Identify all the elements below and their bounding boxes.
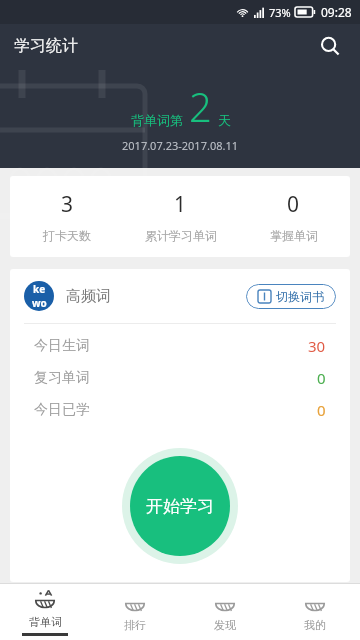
button[interactable]: 开始学习 [130, 456, 230, 556]
staticText: 09:28 [321, 4, 352, 20]
button[interactable]: 排行 [90, 584, 180, 640]
staticText: 掌握单词 [270, 228, 318, 243]
staticText: 3 [61, 190, 74, 219]
staticText: 背单词第 [131, 112, 183, 128]
staticText: 我的 [304, 618, 326, 632]
staticText: 73% [269, 5, 291, 20]
button[interactable]: 3 [10, 190, 124, 243]
staticText: 2017.07.23-2017.08.11 [122, 138, 239, 153]
staticText: wo [32, 296, 47, 310]
staticText: ke [33, 282, 46, 296]
staticText: 2 [189, 79, 212, 133]
staticText: 高频词 [66, 287, 111, 306]
staticText: 排行 [124, 618, 146, 632]
staticText: 1 [174, 190, 187, 219]
staticText: 天 [218, 112, 231, 128]
staticText: 打卡天数 [43, 228, 91, 243]
staticText: 复习单词 [34, 369, 90, 387]
button[interactable]: 发现 [180, 584, 270, 640]
button[interactable]: 切换词书 [246, 284, 336, 309]
staticText: 发现 [214, 618, 236, 632]
staticText: 0 [317, 368, 326, 388]
staticText: 学习统计 [14, 36, 78, 56]
staticText: 切换词书 [276, 289, 324, 304]
button[interactable]: 1 [124, 190, 237, 243]
staticText: 累计学习单词 [145, 228, 217, 243]
staticText: 0 [287, 190, 300, 219]
staticText: 今日已学 [34, 401, 90, 419]
button[interactable]: 背单词 [0, 584, 90, 640]
button[interactable]: 我的 [270, 584, 360, 640]
button[interactable]: 复习单词 [10, 362, 350, 394]
staticText: 开始学习 [146, 496, 214, 517]
button[interactable]: 今日生词 [10, 330, 350, 362]
staticText: 背单词 [29, 615, 62, 629]
button[interactable]: 0 [237, 190, 350, 243]
staticText: 30 [308, 336, 326, 356]
button[interactable]: 今日已学 [10, 394, 350, 426]
staticText: 今日生词 [34, 337, 90, 355]
button[interactable]: Search [310, 26, 350, 66]
staticText: 0 [317, 400, 326, 420]
